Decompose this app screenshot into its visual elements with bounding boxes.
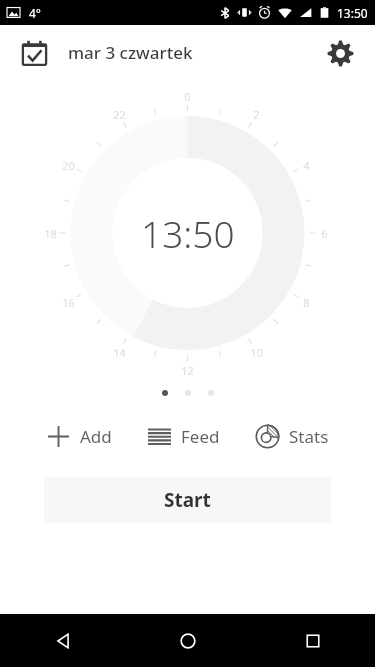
staticText: 13:50 xyxy=(337,5,368,21)
button[interactable]: Back xyxy=(0,614,125,667)
staticText: 4° xyxy=(29,5,42,21)
button[interactable]: Stats xyxy=(253,418,331,455)
button[interactable]: Home xyxy=(125,614,250,667)
button[interactable]: Feed xyxy=(145,418,222,455)
button[interactable]: Calendar xyxy=(14,33,54,73)
button[interactable]: Add xyxy=(44,418,114,455)
staticText: Stats xyxy=(289,425,329,448)
staticText: 6 xyxy=(321,226,328,241)
staticText: 14 xyxy=(113,345,126,360)
button[interactable]: Start xyxy=(44,477,331,523)
staticText: 8 xyxy=(303,295,310,310)
button[interactable]: Settings xyxy=(319,32,361,74)
staticText: Feed xyxy=(181,425,220,448)
staticText: 22 xyxy=(113,107,126,122)
staticText: 0 xyxy=(184,89,191,104)
staticText: Add xyxy=(80,425,112,448)
button[interactable]: Recent apps xyxy=(250,614,375,667)
staticText: 10 xyxy=(250,345,263,360)
staticText: mar 3 czwartek xyxy=(68,41,193,64)
staticText: 20 xyxy=(62,158,75,173)
staticText: Start xyxy=(164,487,211,513)
staticText: 13:50 xyxy=(141,208,235,258)
staticText: 16 xyxy=(62,295,75,310)
staticText: 18 xyxy=(44,226,57,241)
staticText: 2 xyxy=(253,107,260,122)
staticText: 12 xyxy=(181,363,194,378)
staticText: 4 xyxy=(303,158,310,173)
